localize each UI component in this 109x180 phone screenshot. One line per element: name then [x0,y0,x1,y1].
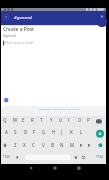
staticText: ?123 [3,155,10,159]
button[interactable] [25,154,71,161]
staticText: W [13,117,18,123]
staticText: X [23,142,26,148]
button[interactable] [96,130,104,138]
staticText: T [40,117,43,123]
button[interactable] [95,117,104,125]
button[interactable] [50,163,60,173]
staticText: A [5,129,8,135]
staticText: M [70,142,75,148]
staticText: I [68,117,70,123]
button[interactable] [1,106,106,116]
staticText: N [60,142,64,148]
staticText: G [42,129,46,135]
staticText: H [52,129,56,135]
staticText: Create a Post [3,26,34,33]
button[interactable] [2,13,10,21]
staticText: V [42,142,45,148]
staticText: E [22,117,25,123]
staticText: What's in your mind? [4,41,34,45]
button[interactable] [2,38,105,50]
staticText: R [31,117,34,123]
button[interactable] [97,19,107,27]
button[interactable] [1,11,106,25]
staticText: C [32,142,35,148]
staticText: Y [50,117,53,123]
staticText: S [14,129,17,135]
staticText: Q [3,117,7,123]
staticText: U [59,117,63,123]
button[interactable] [98,13,106,21]
staticText: D [24,129,28,135]
staticText: P [87,117,90,123]
staticText: Suggested content here. Tap for info [39,107,80,110]
staticText: K [70,129,73,135]
staticText: O [78,117,82,123]
staticText: B [51,142,54,148]
staticText: ?123 [96,155,103,159]
staticText: F [33,129,36,135]
staticText: Z [14,142,17,148]
staticText: J [61,129,63,135]
staticText: L [80,129,83,135]
button[interactable] [2,96,11,105]
button[interactable] [74,163,84,173]
staticText: #general [14,14,33,20]
button[interactable] [26,163,36,173]
staticText: #general [3,34,16,38]
